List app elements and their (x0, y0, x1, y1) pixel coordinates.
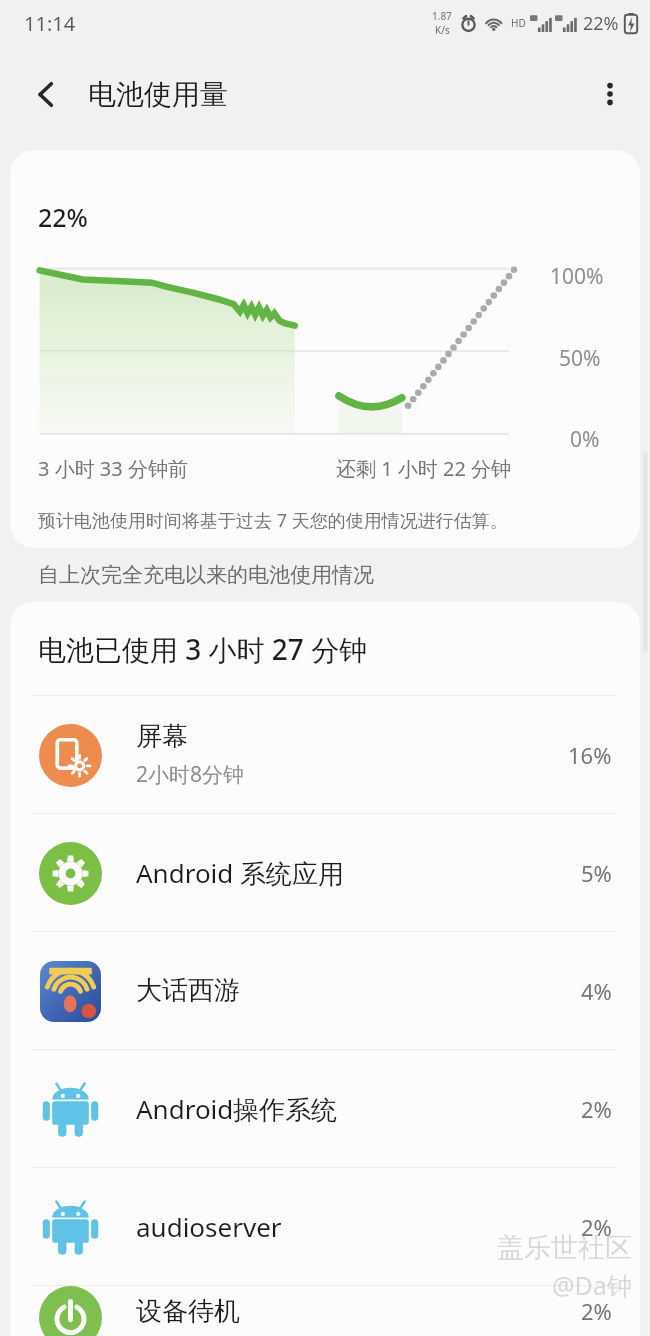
staticText: 预计电池使用时间将基于过去 7 天您的使用情况进行估算。 (38, 508, 508, 533)
button[interactable]: 屏幕 (10, 696, 640, 813)
button[interactable]: Android操作系统 (10, 1050, 640, 1167)
staticText: 屏幕 (136, 720, 188, 753)
staticText: 1.87 (432, 9, 452, 23)
staticText: 100% (550, 262, 604, 291)
button[interactable]: More options (584, 68, 636, 120)
staticText: 电池使用量 (88, 77, 228, 112)
staticText: 11:14 (24, 10, 76, 37)
staticText: K/s (435, 23, 450, 37)
staticText: 盖乐世社区 (497, 1231, 632, 1265)
staticText: 22% (38, 200, 88, 234)
staticText: 电池已使用 3 小时 27 分钟 (38, 630, 368, 668)
button[interactable]: audioserver (10, 1168, 640, 1285)
staticText: 16% (568, 740, 612, 770)
staticText: 设备待机 (136, 1295, 240, 1328)
staticText: 自上次完全充电以来的电池使用情况 (38, 562, 374, 588)
staticText: 22% (583, 11, 619, 36)
staticText: 4% (581, 976, 612, 1006)
staticText: 2小时8分钟 (136, 760, 245, 789)
staticText: 2% (581, 1094, 612, 1124)
staticText: HD (511, 16, 526, 30)
button[interactable]: 大话西游 (10, 932, 640, 1049)
staticText: Android操作系统 (136, 1091, 338, 1127)
button[interactable]: Android 系统应用 (10, 814, 640, 931)
staticText: @Da钟 (552, 1268, 632, 1302)
staticText: 大话西游 (136, 974, 240, 1007)
staticText: audioserver (136, 1209, 282, 1244)
staticText: 还剩 1 小时 22 分钟 (336, 455, 512, 482)
button[interactable]: 设备待机 (10, 1286, 640, 1336)
button[interactable]: Back (20, 68, 72, 120)
staticText: 0% (570, 425, 600, 454)
staticText: 50% (559, 344, 601, 373)
staticText: 2% (581, 1296, 612, 1326)
staticText: 2% (581, 1212, 612, 1242)
staticText: 5% (581, 858, 612, 888)
staticText: Android 系统应用 (136, 855, 345, 891)
staticText: 3 小时 33 分钟前 (38, 455, 188, 482)
